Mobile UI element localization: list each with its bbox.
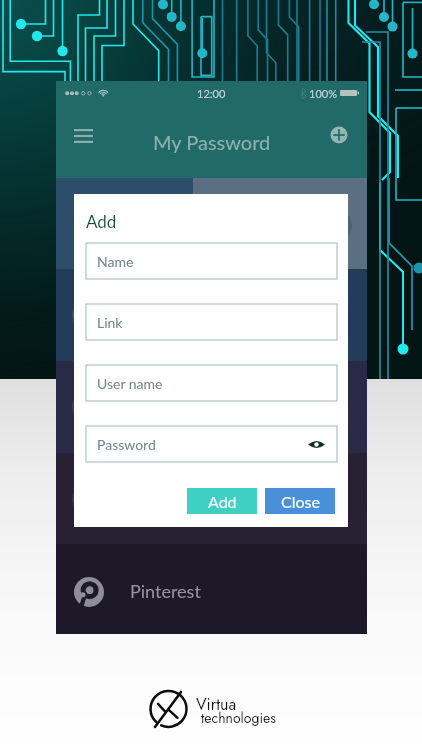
staticText: Add <box>208 492 237 511</box>
button[interactable] <box>56 361 367 453</box>
staticText: Pinterest <box>130 580 201 602</box>
staticText: 12:00 <box>197 87 226 100</box>
button[interactable]: Password <box>86 426 337 462</box>
button[interactable]: Show password <box>305 433 327 455</box>
button[interactable]: Add <box>187 488 257 514</box>
button[interactable]: Menu <box>68 123 102 157</box>
button[interactable]: Link <box>86 304 337 340</box>
staticText: Link <box>97 314 123 331</box>
staticText: Name <box>97 253 134 270</box>
staticText: Add <box>86 211 117 231</box>
staticText: My Password <box>153 130 271 154</box>
button[interactable] <box>56 178 367 269</box>
staticText: Virtua <box>196 693 237 716</box>
staticText: 100% <box>309 87 337 100</box>
staticText: User name <box>97 375 163 392</box>
button[interactable] <box>56 269 367 361</box>
staticText: technologies <box>201 708 276 728</box>
button[interactable]: Name <box>86 243 337 279</box>
button[interactable]: User name <box>86 365 337 401</box>
staticText: Close <box>281 492 320 511</box>
button[interactable]: Close <box>265 488 335 514</box>
button[interactable] <box>56 453 367 544</box>
button[interactable]: Pinterest <box>56 544 367 634</box>
staticText: Password <box>97 436 156 453</box>
button[interactable]: Add password <box>322 118 356 152</box>
